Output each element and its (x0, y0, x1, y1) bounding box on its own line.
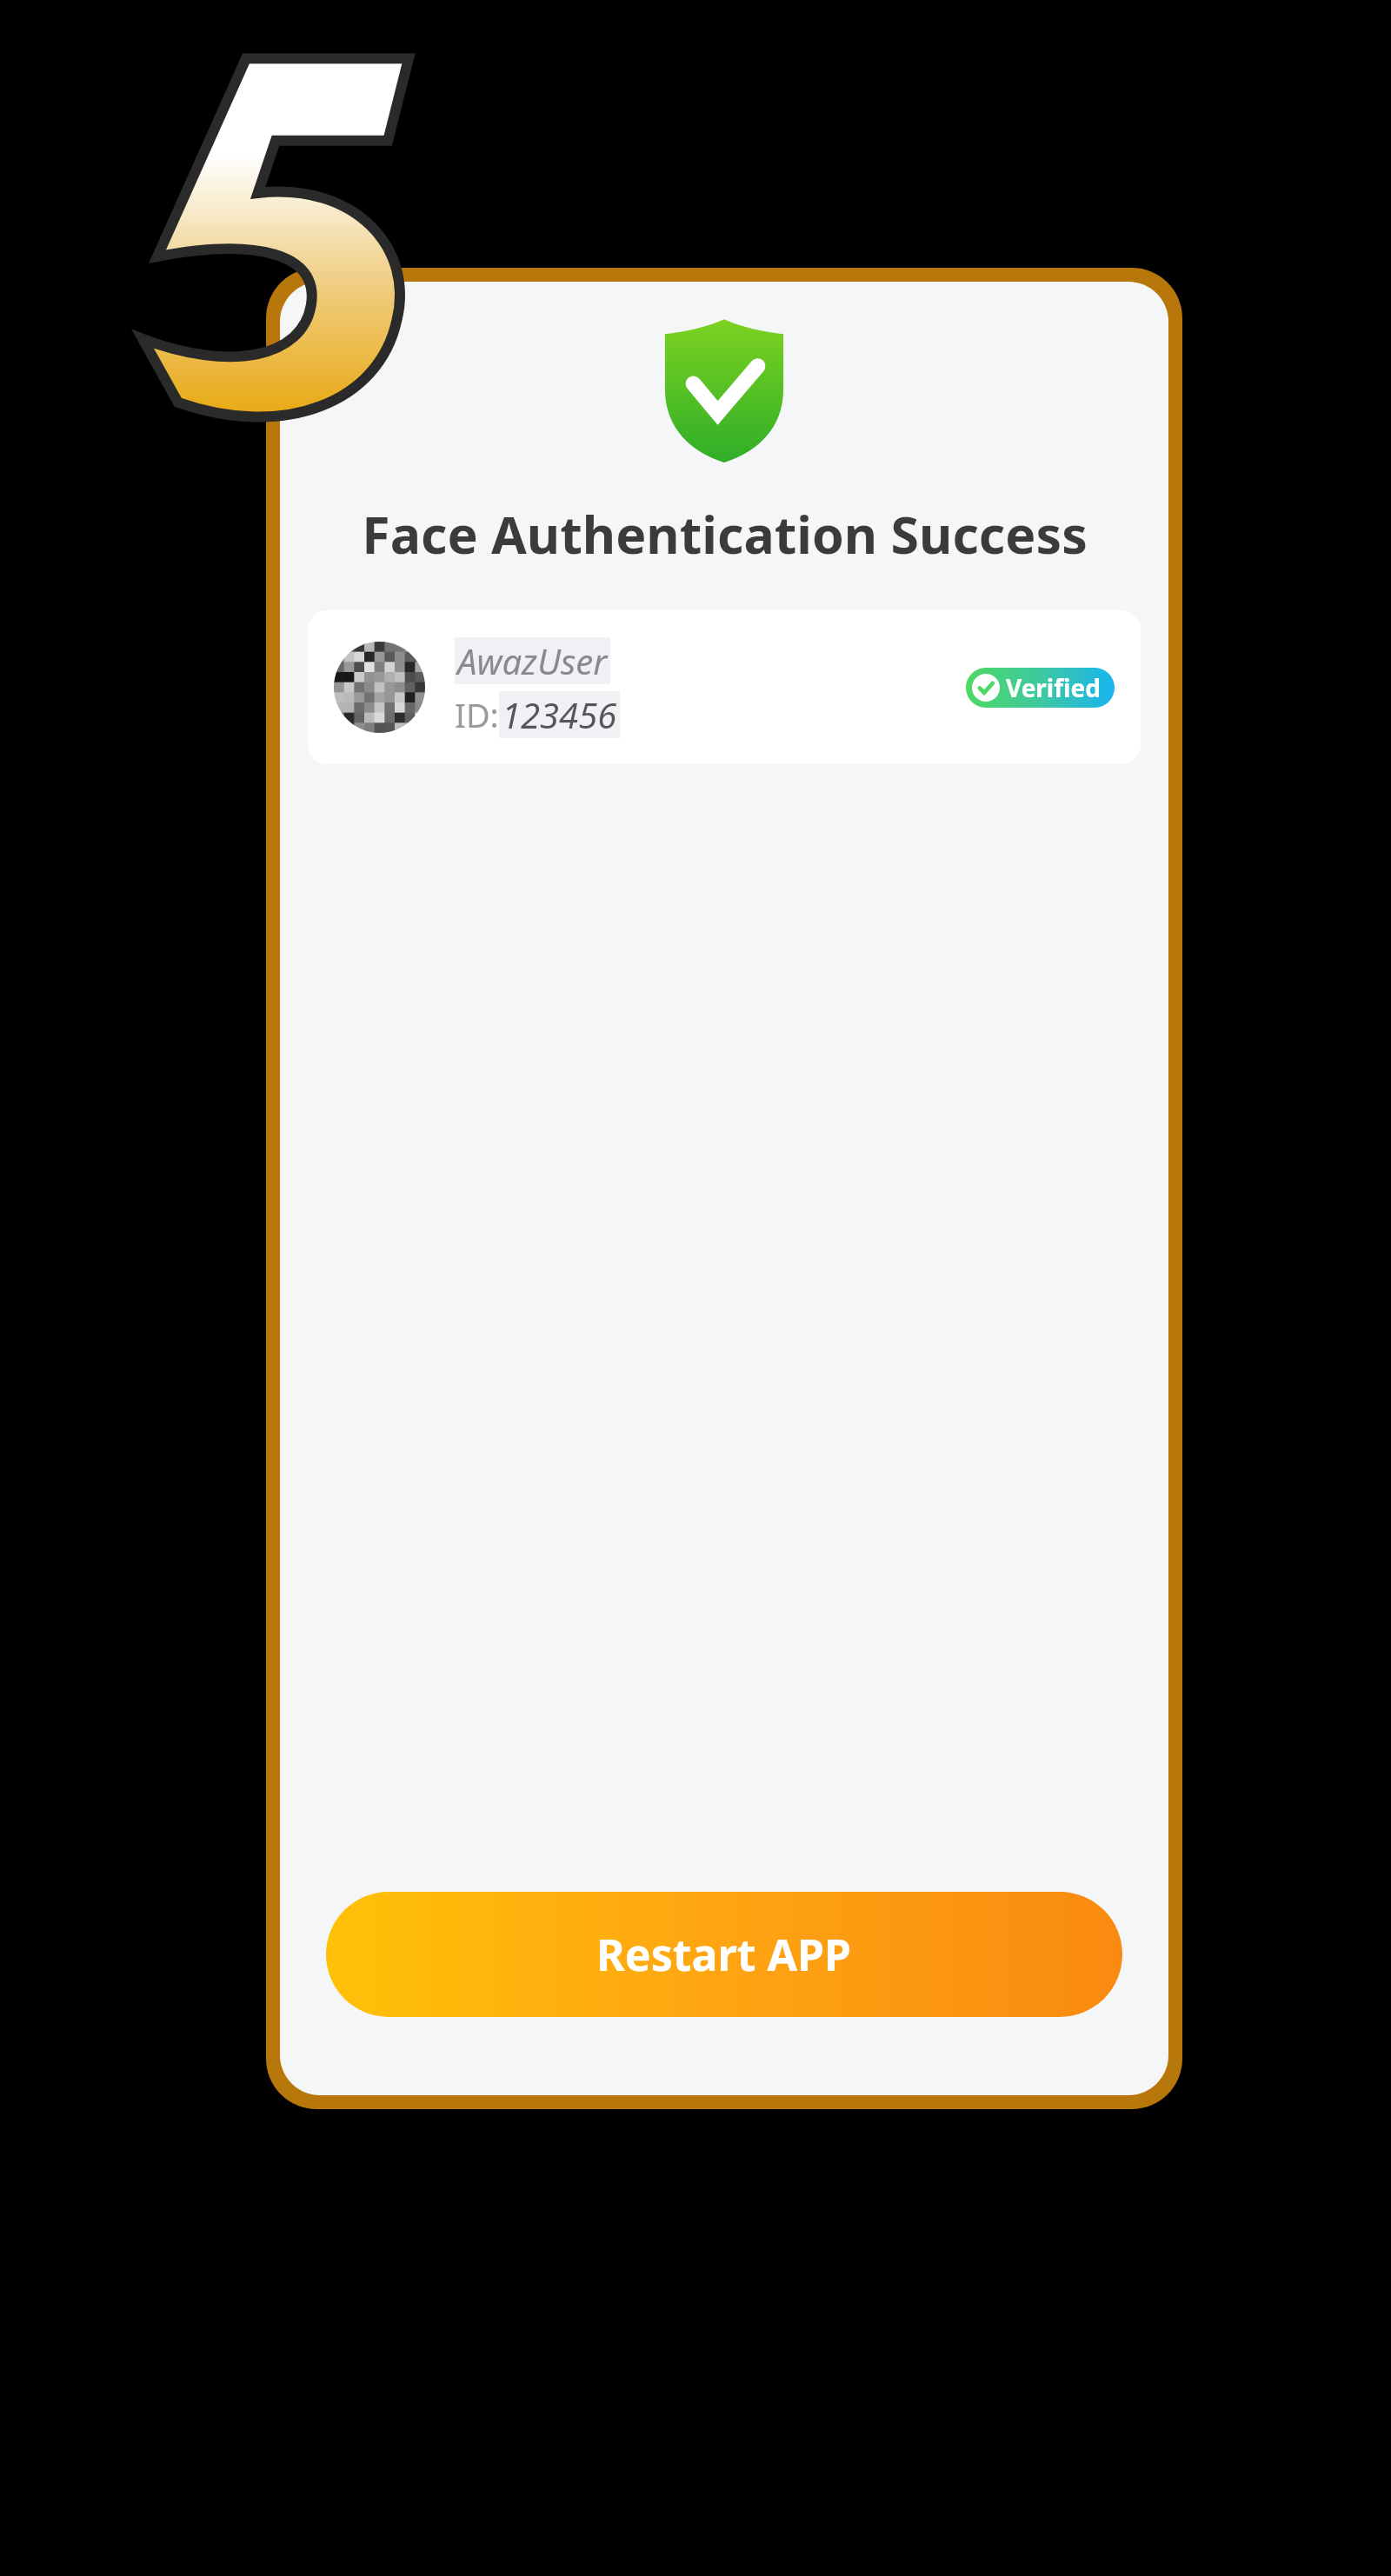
staticText: Restart APP (596, 1925, 852, 1984)
other: Step 5 (113, 43, 409, 417)
staticText: AwazUser (457, 637, 608, 684)
staticText: Verified (1006, 671, 1101, 704)
button[interactable]: AwazUser (308, 610, 1141, 764)
staticText: ID: (455, 692, 499, 737)
button[interactable]: Restart APP (326, 1892, 1122, 2017)
staticText: Face Authentication Success (362, 499, 1088, 569)
button[interactable]: Verified (966, 668, 1115, 708)
staticText: 123456 (502, 691, 617, 738)
